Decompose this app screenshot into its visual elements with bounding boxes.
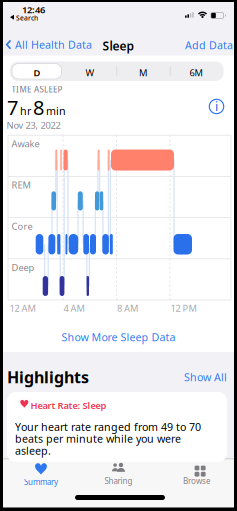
staticText: asleep. <box>15 443 51 458</box>
button[interactable]: Summary <box>11 462 71 487</box>
staticText: 12 AM <box>9 302 35 314</box>
staticText: 12 PM <box>170 302 196 314</box>
button[interactable]: Sharing <box>88 462 148 486</box>
staticText: Search <box>16 13 38 22</box>
staticText: Show More Sleep Data <box>61 330 175 344</box>
staticText: W <box>85 66 94 79</box>
button[interactable]: All Health Data <box>6 37 92 52</box>
button[interactable]: Show All <box>184 370 227 384</box>
staticText: Your heart rate ranged from 49 to 70 <box>15 420 201 434</box>
staticText: Sharing <box>104 475 132 486</box>
staticText: Heart Rate: Sleep <box>30 399 106 412</box>
staticText: 6M <box>189 66 202 79</box>
staticText: Show All <box>184 370 227 384</box>
staticText: 12:46 <box>22 3 45 16</box>
button[interactable]: Show More Sleep Data <box>0 330 237 344</box>
staticText: 8 <box>33 94 44 121</box>
staticText: Awake <box>11 137 39 150</box>
staticText: Summary <box>24 477 58 487</box>
staticText: 7 <box>7 94 18 121</box>
button[interactable]: Browse <box>167 462 227 486</box>
button[interactable]: About Sleep <box>209 98 224 114</box>
staticText: TIME ASLEEP <box>11 84 62 95</box>
button[interactable]: W <box>65 66 115 79</box>
staticText: Nov 23, 2022 <box>6 119 60 131</box>
staticText: REM <box>11 179 30 191</box>
button[interactable]: Heart Rate: Sleep <box>7 392 227 462</box>
staticText: Browse <box>183 475 211 486</box>
staticText: hr <box>20 104 31 118</box>
staticText: Sleep <box>102 38 134 54</box>
staticText: min <box>46 104 66 118</box>
staticText: D <box>33 66 40 79</box>
staticText: M <box>139 66 147 79</box>
staticText: Highlights <box>7 366 89 388</box>
staticText: 4 AM <box>63 302 84 314</box>
staticText: Core <box>11 220 32 232</box>
staticText: i <box>215 98 218 114</box>
staticText: Deep <box>11 261 34 274</box>
staticText: Add Data <box>185 38 233 52</box>
button[interactable]: 6M <box>171 66 221 79</box>
staticText: All Health Data <box>15 37 92 52</box>
button[interactable]: M <box>118 66 168 79</box>
button[interactable]: Add Data <box>185 38 233 52</box>
staticText: 8 AM <box>117 302 138 314</box>
button[interactable]: D <box>12 66 62 79</box>
staticText: beats per minute while you were <box>15 431 181 446</box>
